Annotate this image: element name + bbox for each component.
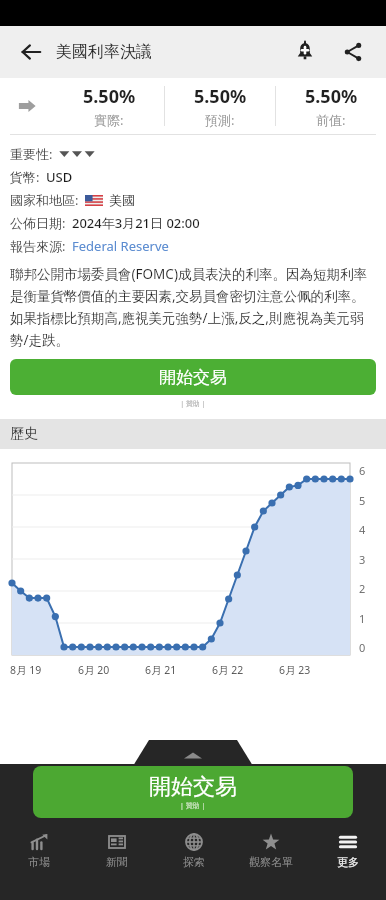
staticText: 2: [359, 581, 366, 596]
button[interactable]: Share: [334, 33, 372, 71]
staticText: 6月 22: [212, 663, 279, 677]
staticText: 3: [359, 552, 366, 567]
staticText: 5.50%: [83, 84, 136, 109]
staticText: 4: [359, 522, 366, 537]
staticText: 預測:: [205, 111, 235, 129]
button[interactable]: 開始交易: [10, 359, 376, 395]
staticText: USD: [46, 168, 73, 186]
staticText: 2024年3月21日 02:00: [72, 214, 200, 232]
staticText: 6: [359, 463, 366, 478]
staticText: 觀察名單: [249, 855, 293, 869]
button[interactable]: Federal Reserve: [72, 237, 169, 255]
staticText: 前值:: [316, 111, 346, 129]
staticText: 開始交易: [159, 367, 227, 388]
staticText: 公佈日期:: [10, 214, 66, 232]
staticText: 5: [359, 493, 366, 508]
staticText: 更多: [337, 855, 359, 869]
staticText: 開始交易: [149, 773, 237, 801]
button[interactable]: 市場: [0, 826, 78, 874]
button[interactable]: Back: [14, 35, 48, 69]
button[interactable]: 新聞: [78, 826, 155, 874]
staticText: 報告來源:: [10, 237, 66, 255]
staticText: 實際:: [94, 111, 124, 129]
staticText: 美國: [109, 192, 135, 208]
staticText: 6月 23: [279, 663, 346, 677]
button[interactable]: 探索: [155, 826, 232, 874]
staticText: 1: [359, 611, 366, 626]
button[interactable]: Add alert: [286, 33, 324, 71]
staticText: 重要性:: [10, 145, 53, 163]
button[interactable]: 觀察名單: [232, 826, 309, 874]
staticText: 美國利率決議: [56, 42, 152, 62]
staticText: 6月 21: [145, 663, 212, 677]
button[interactable]: 更多: [309, 826, 386, 874]
button[interactable]: 開始交易: [33, 766, 353, 818]
staticText: 國家和地區:: [10, 191, 79, 209]
staticText: 6月 20: [78, 663, 145, 677]
staticText: | 贊助 |: [180, 801, 206, 811]
staticText: 市場: [28, 855, 50, 869]
staticText: 5.50%: [194, 84, 247, 109]
staticText: 8月 19: [10, 663, 78, 677]
staticText: 探索: [183, 855, 205, 869]
staticText: | 贊助 |: [180, 399, 206, 409]
staticText: 聯邦公開市場委員會(FOMC)成員表決的利率。因為短期利率是衡量貨幣價值的主要因…: [10, 265, 376, 349]
staticText: 0: [359, 640, 366, 655]
staticText: 新聞: [106, 855, 128, 869]
staticText: 貨幣:: [10, 168, 40, 186]
staticText: 歷史: [10, 425, 38, 443]
staticText: 5.50%: [305, 84, 358, 109]
